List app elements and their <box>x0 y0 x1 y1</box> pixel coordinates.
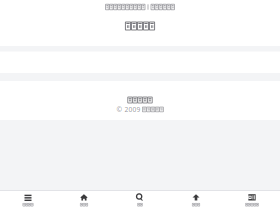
button[interactable]: More <box>224 191 280 210</box>
staticText: © 2009 <box>117 105 141 114</box>
button[interactable]: Home <box>56 191 112 210</box>
button[interactable]: Search <box>112 191 168 210</box>
button[interactable]: Upload <box>168 191 224 210</box>
button[interactable]: Categories <box>0 191 56 210</box>
